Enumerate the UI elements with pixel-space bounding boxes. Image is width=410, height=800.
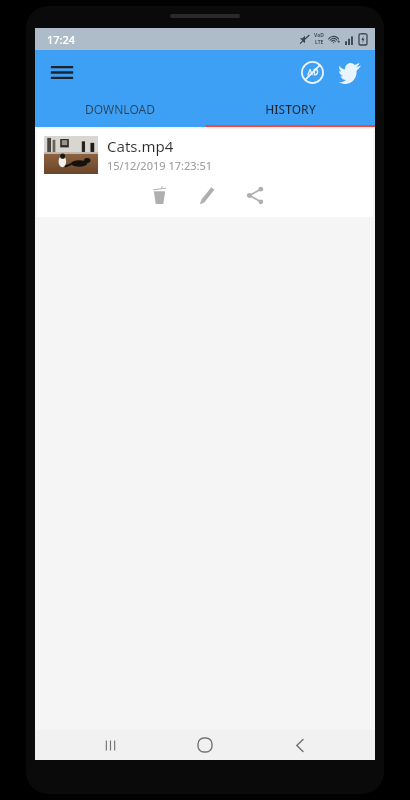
button[interactable]: Share xyxy=(239,179,271,211)
staticText: Cats.mp4 xyxy=(107,136,174,156)
button[interactable]: Twitter xyxy=(331,53,369,91)
staticText: 15/12/2019 17:23:51 xyxy=(107,158,213,173)
button[interactable]: HISTORY xyxy=(205,93,375,125)
button[interactable]: Rename xyxy=(191,179,223,211)
button[interactable]: Cats.mp4 xyxy=(37,129,373,217)
button[interactable]: Recent apps xyxy=(90,730,130,760)
button[interactable]: Back xyxy=(280,730,320,760)
staticText: DOWNLOAD xyxy=(85,101,155,117)
button[interactable]: Delete xyxy=(143,179,175,211)
button[interactable]: DOWNLOAD xyxy=(35,93,205,125)
button[interactable]: Remove ads xyxy=(293,53,331,91)
staticText: 17:24 xyxy=(47,32,76,47)
button[interactable]: Open navigation menu xyxy=(43,53,81,91)
staticText: LTE xyxy=(315,39,324,46)
staticText: VoD xyxy=(314,32,324,39)
staticText: HISTORY xyxy=(265,101,316,117)
button[interactable]: Home xyxy=(185,730,225,760)
